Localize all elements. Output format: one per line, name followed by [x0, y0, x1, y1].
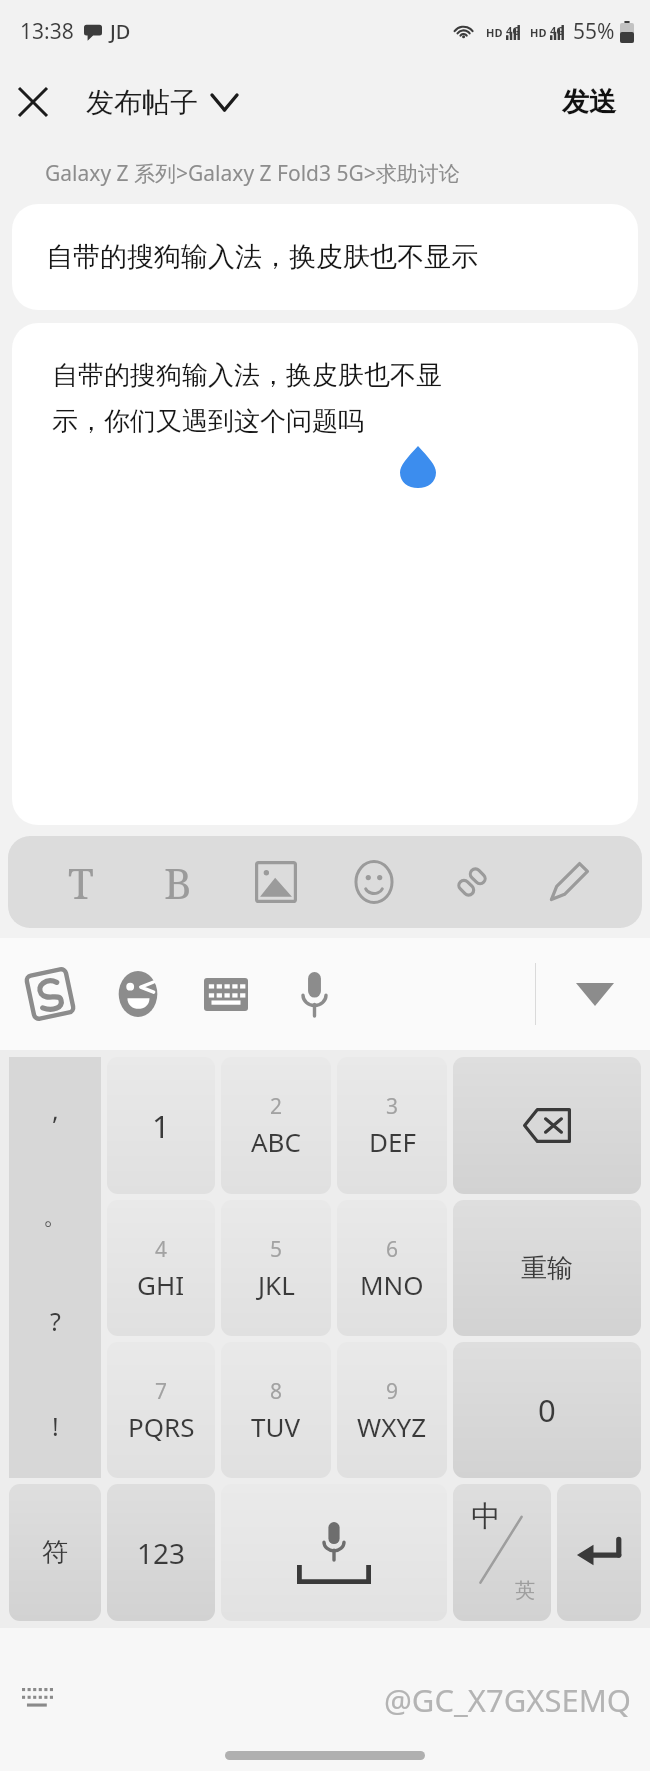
button[interactable]: 7 [107, 1342, 215, 1478]
button[interactable]: Hide keyboard [562, 961, 628, 1027]
staticText: 123 [137, 1534, 186, 1572]
staticText: T [68, 854, 94, 911]
staticText: HD [486, 25, 503, 40]
button[interactable]: Switch Chinese and English [453, 1484, 551, 1621]
button[interactable]: 3 [337, 1057, 447, 1194]
button[interactable]: 自带的搜狗输入法，换皮肤也不显示 [12, 204, 638, 310]
button[interactable]: Emoji [337, 845, 411, 919]
staticText: 4G [506, 23, 521, 38]
button[interactable]: Insert image [239, 845, 313, 919]
staticText: Galaxy Z 系列>Galaxy Z Fold3 5G>求助讨论 [45, 159, 460, 188]
staticText: PQRS [128, 1409, 195, 1444]
staticText: JD [110, 18, 131, 45]
button[interactable]: 5 [221, 1200, 331, 1336]
staticText: 符 [42, 1536, 68, 1569]
staticText: TUV [251, 1409, 301, 1444]
button[interactable]: Insert link [435, 845, 509, 919]
button[interactable]: 1 [107, 1057, 215, 1194]
staticText: 1 [152, 1105, 170, 1147]
button[interactable]: 2 [221, 1057, 331, 1194]
button[interactable]: Enter [557, 1484, 641, 1621]
staticText: 中 [471, 1498, 500, 1535]
staticText: 6 [386, 1235, 399, 1264]
staticText: 发布帖子 [86, 85, 198, 120]
staticText: 5 [270, 1235, 283, 1264]
button[interactable]: 9 [337, 1342, 447, 1478]
staticText: @GC_X7GXSEMQ [384, 1679, 632, 1721]
button[interactable]: 6 [337, 1200, 447, 1336]
button[interactable]: ! [9, 1373, 101, 1478]
button[interactable]: ? [9, 1268, 101, 1373]
button[interactable]: 123 [107, 1484, 215, 1621]
staticText: 3 [386, 1092, 399, 1121]
button[interactable]: 符 [9, 1484, 101, 1621]
staticText: 13:38 [20, 17, 74, 46]
button[interactable]: , [9, 1057, 101, 1163]
staticText: 9 [386, 1377, 399, 1406]
button[interactable]: Close [0, 69, 66, 135]
button[interactable]: Space and voice input [221, 1484, 447, 1621]
button[interactable]: Keyboard switcher [6, 1666, 74, 1734]
button[interactable]: Sogou input [16, 960, 84, 1028]
button[interactable]: Emoji [104, 960, 172, 1028]
staticText: ? [50, 1304, 61, 1338]
staticText: 重输 [521, 1252, 573, 1285]
button[interactable]: 4 [107, 1200, 215, 1336]
staticText: DEF [369, 1124, 416, 1159]
staticText: B [164, 854, 192, 911]
button[interactable]: Backspace [453, 1057, 641, 1194]
staticText: HD [530, 25, 547, 40]
staticText: 0 [538, 1389, 556, 1431]
staticText: 8 [270, 1377, 283, 1406]
staticText: 55% [573, 17, 615, 46]
staticText: JKL [258, 1267, 295, 1302]
button[interactable]: 发布帖子 [82, 77, 241, 128]
button[interactable]: 发送 [538, 75, 640, 129]
staticText: 自带的搜狗输入法，换皮肤也不显 示，你们又遇到这个问题吗 [52, 359, 442, 438]
staticText: 4 [155, 1235, 168, 1264]
staticText: 4G [550, 23, 565, 38]
button[interactable]: Keyboard layout [192, 960, 260, 1028]
staticText: 7 [155, 1377, 168, 1406]
staticText: ! [52, 1409, 59, 1443]
staticText: 自带的搜狗输入法，换皮肤也不显示 [46, 240, 478, 274]
staticText: WXYZ [357, 1409, 427, 1444]
button[interactable]: 0 [453, 1342, 641, 1478]
button[interactable]: Bold [141, 845, 215, 919]
staticText: 。 [43, 1200, 68, 1231]
button[interactable]: Voice input [280, 960, 348, 1028]
button[interactable]: 。 [9, 1163, 101, 1268]
button[interactable]: Draw [532, 845, 606, 919]
staticText: GHI [137, 1267, 185, 1302]
button[interactable]: Text style [44, 845, 118, 919]
staticText: ABC [251, 1124, 301, 1159]
staticText: 2 [270, 1092, 283, 1121]
staticText: MNO [360, 1267, 424, 1302]
button[interactable]: 8 [221, 1342, 331, 1478]
staticText: 英 [515, 1578, 535, 1603]
staticText: 发送 [562, 85, 616, 119]
staticText: , [52, 1093, 59, 1127]
button[interactable]: 重输 [453, 1200, 641, 1336]
button[interactable]: 自带的搜狗输入法，换皮肤也不显 示，你们又遇到这个问题吗 [12, 323, 638, 825]
